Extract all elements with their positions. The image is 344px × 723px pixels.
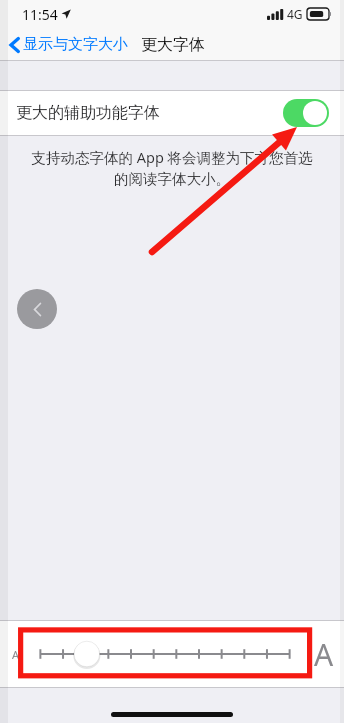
staticText: 显示与文字大小 [23,35,128,54]
button[interactable]: 显示与文字大小 [0,31,134,58]
staticText: 11:54 [22,5,58,24]
staticText: 4G [287,6,303,22]
staticText: 更大字体 [141,35,205,55]
button[interactable]: 字体大小滑块 [31,634,299,674]
button[interactable]: 更大的辅助功能字体 开关 [283,99,329,127]
staticText: A [314,634,334,675]
staticText: A [12,647,20,662]
staticText: 支持动态字体的 App 将会调整为下方您首选的阅读字体大小。 [26,147,318,188]
button[interactable]: 更大的辅助功能字体 [0,91,344,135]
staticText: 更大的辅助功能字体 [16,103,283,123]
button[interactable]: 返回 [17,289,57,329]
